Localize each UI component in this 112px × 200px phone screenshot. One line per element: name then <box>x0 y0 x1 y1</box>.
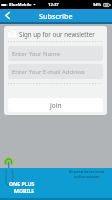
staticText: Enter Your Name <box>12 50 61 58</box>
button[interactable]: Enter Your Name <box>8 46 103 61</box>
button[interactable]: Enter Your E-mail Address <box>8 64 103 79</box>
staticText: Enter Your E-mail Address <box>12 68 85 76</box>
button[interactable]: Join <box>8 98 103 112</box>
staticText: Subscribe <box>39 11 73 21</box>
staticText: 12:37 <box>48 2 59 8</box>
button[interactable]: Back <box>0 9 15 22</box>
staticText: ONE PLUS <box>9 180 35 187</box>
staticText: 94% <box>93 2 102 7</box>
staticText: Sign up for our newsletter <box>19 30 95 38</box>
staticText: We provide the best service <box>69 170 105 174</box>
staticText: Join <box>50 101 62 110</box>
staticText: to all our customers <box>74 175 100 179</box>
staticText: BlueMobile <box>9 2 32 7</box>
staticText: MOBILE <box>14 187 35 194</box>
